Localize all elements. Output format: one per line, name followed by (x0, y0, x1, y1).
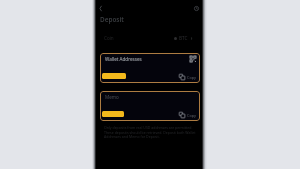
staticText: BTC (179, 35, 188, 41)
staticText: Copy (187, 75, 196, 80)
staticText: Only deposits from real USD addresses ar… (104, 125, 196, 139)
button[interactable]: Transaction history (192, 4, 201, 13)
button[interactable]: Show QR code (189, 55, 196, 62)
staticText: Memo (105, 94, 119, 100)
button[interactable]: Memo (100, 91, 200, 121)
button[interactable]: Wallet Addresses (100, 53, 200, 83)
button[interactable]: Coin (100, 32, 198, 44)
staticText: Copy (187, 113, 196, 118)
staticText: Coin (104, 35, 114, 41)
button[interactable]: Copy (179, 112, 196, 118)
button[interactable]: Back (96, 4, 105, 13)
staticText: Deposit (100, 15, 124, 24)
staticText: Wallet Addresses (105, 56, 142, 62)
button[interactable]: Copy (179, 74, 196, 80)
